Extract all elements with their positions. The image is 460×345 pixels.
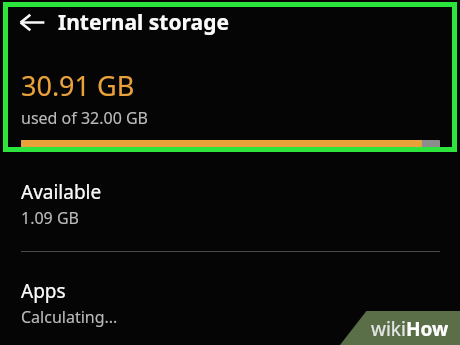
staticText: Available — [21, 179, 102, 205]
staticText: Internal storage — [58, 8, 229, 37]
staticText: 30.91 GB — [21, 67, 135, 104]
button[interactable]: Back — [10, 0, 54, 44]
staticText: 1.09 GB — [21, 207, 79, 229]
staticText: used of 32.00 GB — [21, 107, 149, 129]
button[interactable]: 30.91 GB — [0, 58, 460, 149]
staticText: Calculating... — [21, 306, 118, 328]
staticText: wiki — [371, 316, 406, 342]
staticText: How — [406, 316, 449, 342]
button[interactable]: Available — [0, 179, 460, 278]
staticText: Apps — [21, 278, 66, 304]
button[interactable]: Apps — [0, 278, 460, 345]
